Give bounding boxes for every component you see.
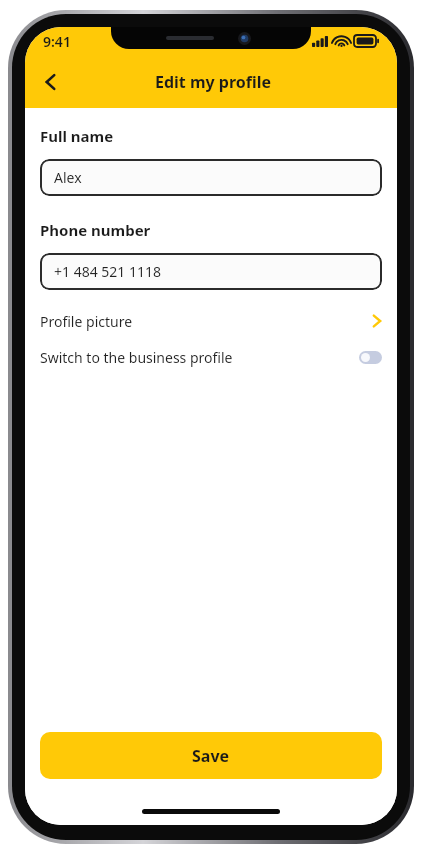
staticText: Alex xyxy=(54,168,82,187)
staticText: +1 484 521 1118 xyxy=(54,262,162,281)
staticText: Switch to the business profile xyxy=(40,348,233,367)
button[interactable]: +1 484 521 1118 xyxy=(40,253,382,290)
staticText: Profile picture xyxy=(40,312,133,331)
button[interactable]: Alex xyxy=(40,159,382,196)
staticText: Edit my profile xyxy=(51,71,375,93)
staticText: Phone number xyxy=(40,220,151,240)
button[interactable]: Save xyxy=(40,732,382,779)
staticText: 9:41 xyxy=(43,32,71,51)
button[interactable]: Profile picture xyxy=(25,307,397,335)
staticText: Save xyxy=(192,745,230,767)
button[interactable]: Switch to the business profile xyxy=(359,351,382,364)
staticText: Full name xyxy=(40,126,114,146)
button[interactable]: Back xyxy=(29,60,73,104)
button[interactable]: Switch to the business profile xyxy=(25,343,397,371)
